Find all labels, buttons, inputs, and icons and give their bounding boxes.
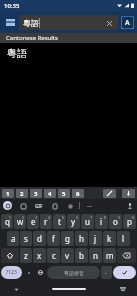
button[interactable]: v <box>61 248 74 263</box>
button[interactable]: Menu <box>3 15 17 29</box>
staticText: c <box>52 250 56 261</box>
staticText: 5 <box>62 190 66 198</box>
button[interactable]: d <box>33 231 46 246</box>
button[interactable]: k <box>103 231 116 246</box>
button[interactable]: l <box>117 231 130 246</box>
staticText: k <box>107 233 112 244</box>
button[interactable]: Enter <box>113 266 136 279</box>
button[interactable]: Period <box>101 266 112 279</box>
button[interactable]: b <box>75 248 88 263</box>
button[interactable]: j <box>89 231 102 246</box>
staticText: 6 <box>76 215 79 220</box>
staticText: j <box>94 233 97 244</box>
staticText: z <box>24 250 28 261</box>
staticText: y <box>71 216 76 227</box>
staticText: 10:35 <box>4 2 20 10</box>
button[interactable]: Clipboard <box>51 202 59 210</box>
button[interactable]: q <box>1 214 13 229</box>
staticText: n <box>93 250 98 261</box>
staticText: g <box>65 233 70 244</box>
button[interactable]: h <box>75 231 88 246</box>
button[interactable]: A <box>121 16 134 29</box>
staticText: o <box>113 216 118 227</box>
button[interactable]: 粵語拼音 <box>47 266 100 279</box>
staticText: f <box>52 233 55 244</box>
button[interactable]: f <box>47 231 60 246</box>
staticText: u <box>85 216 90 227</box>
button[interactable]: y <box>67 214 80 229</box>
staticText: 3 <box>34 190 38 198</box>
staticText: h <box>79 233 84 244</box>
button[interactable]: m <box>103 248 116 263</box>
staticText: t <box>58 216 61 227</box>
button[interactable]: Shift <box>1 248 19 263</box>
button[interactable]: s <box>20 231 32 246</box>
staticText: 粵語 <box>7 47 27 60</box>
staticText: x <box>37 250 42 261</box>
button[interactable]: g <box>61 231 74 246</box>
button[interactable]: n <box>89 248 102 263</box>
button[interactable]: p <box>123 214 136 229</box>
staticText: a <box>11 233 16 244</box>
button[interactable]: 3 <box>30 189 42 198</box>
button[interactable]: Backspace <box>117 248 136 263</box>
staticText: 6 <box>76 190 80 198</box>
staticText: w <box>17 216 24 227</box>
button[interactable]: o <box>109 214 122 229</box>
button[interactable]: e <box>27 214 39 229</box>
button[interactable]: Edit <box>103 189 116 198</box>
staticText: A <box>125 18 130 28</box>
button[interactable]: 4 <box>44 189 56 198</box>
staticText: q <box>5 216 10 227</box>
button[interactable]: 6 <box>72 189 84 198</box>
button[interactable]: Comma <box>23 264 34 281</box>
staticText: 。 <box>105 270 109 275</box>
staticText: 2 <box>20 190 24 198</box>
button[interactable]: More <box>85 202 93 210</box>
staticText: s <box>24 233 28 244</box>
button[interactable]: w <box>14 214 26 229</box>
button[interactable]: x <box>33 248 46 263</box>
button[interactable]: Google <box>3 201 12 210</box>
button[interactable]: 粵語 <box>19 15 118 30</box>
staticText: 1 <box>9 215 12 220</box>
staticText: b <box>79 250 84 261</box>
button[interactable]: 1 <box>2 189 14 198</box>
button[interactable]: t <box>53 214 66 229</box>
button[interactable]: r <box>40 214 52 229</box>
staticText: 2 <box>22 215 25 220</box>
button[interactable]: Clear <box>104 18 114 28</box>
staticText: 1 <box>6 190 10 198</box>
staticText: 粵語 <box>23 18 39 28</box>
button[interactable]: 2 <box>16 189 28 198</box>
button[interactable]: i <box>95 214 108 229</box>
button[interactable]: Voice input <box>125 201 134 210</box>
button[interactable]: c <box>47 248 60 263</box>
staticText: GIF <box>35 203 43 209</box>
staticText: ··· <box>87 202 92 210</box>
staticText: ?123 <box>6 269 17 276</box>
button[interactable]: GIF <box>34 201 44 211</box>
staticText: 4 <box>48 215 51 220</box>
button[interactable]: Change language <box>35 264 46 281</box>
button[interactable]: z <box>20 248 32 263</box>
button[interactable]: ?123 <box>1 266 22 279</box>
staticText: r <box>44 216 48 227</box>
button[interactable]: Recents <box>119 285 127 293</box>
button[interactable]: 5 <box>58 189 70 198</box>
button[interactable]: Download <box>122 189 135 198</box>
button[interactable]: Sticker <box>19 202 27 210</box>
staticText: 5 <box>62 215 65 220</box>
button[interactable]: Settings <box>66 202 74 210</box>
staticText: e <box>31 216 36 227</box>
button[interactable]: Hide keyboard <box>12 285 20 293</box>
staticText: m <box>106 250 114 261</box>
staticText: 9 <box>118 215 121 220</box>
staticText: v <box>65 250 70 261</box>
button[interactable]: a <box>7 231 19 246</box>
button[interactable]: u <box>81 214 94 229</box>
staticText: 0 <box>132 215 135 220</box>
staticText: 8 <box>104 215 107 220</box>
staticText: p <box>127 216 132 227</box>
staticText: l <box>122 233 125 244</box>
